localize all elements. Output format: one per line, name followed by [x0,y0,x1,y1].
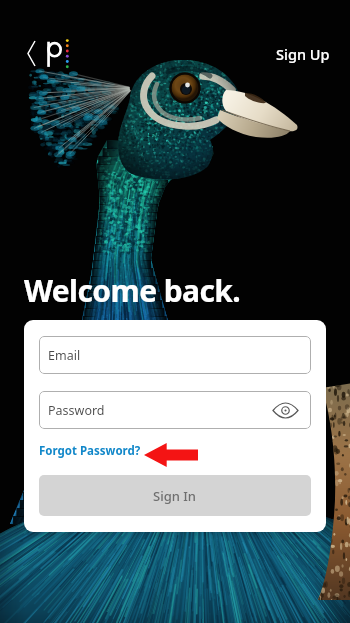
staticText: Sign In [153,487,197,505]
button[interactable]: Password [39,391,311,429]
staticText: Password [48,402,105,419]
button[interactable]: Forgot Password? [39,443,141,459]
button[interactable]: Sign In [39,475,311,516]
button[interactable]: Sign Up [271,38,335,70]
staticText: Forgot Password? [39,443,141,459]
button[interactable]: Back [20,36,42,70]
staticText: Email [48,347,81,364]
button[interactable]: Peacock [47,34,73,68]
other: Show password [273,403,298,418]
staticText: Sign Up [276,44,330,64]
button[interactable]: Email [39,336,311,374]
staticText: Welcome back. [24,270,241,311]
